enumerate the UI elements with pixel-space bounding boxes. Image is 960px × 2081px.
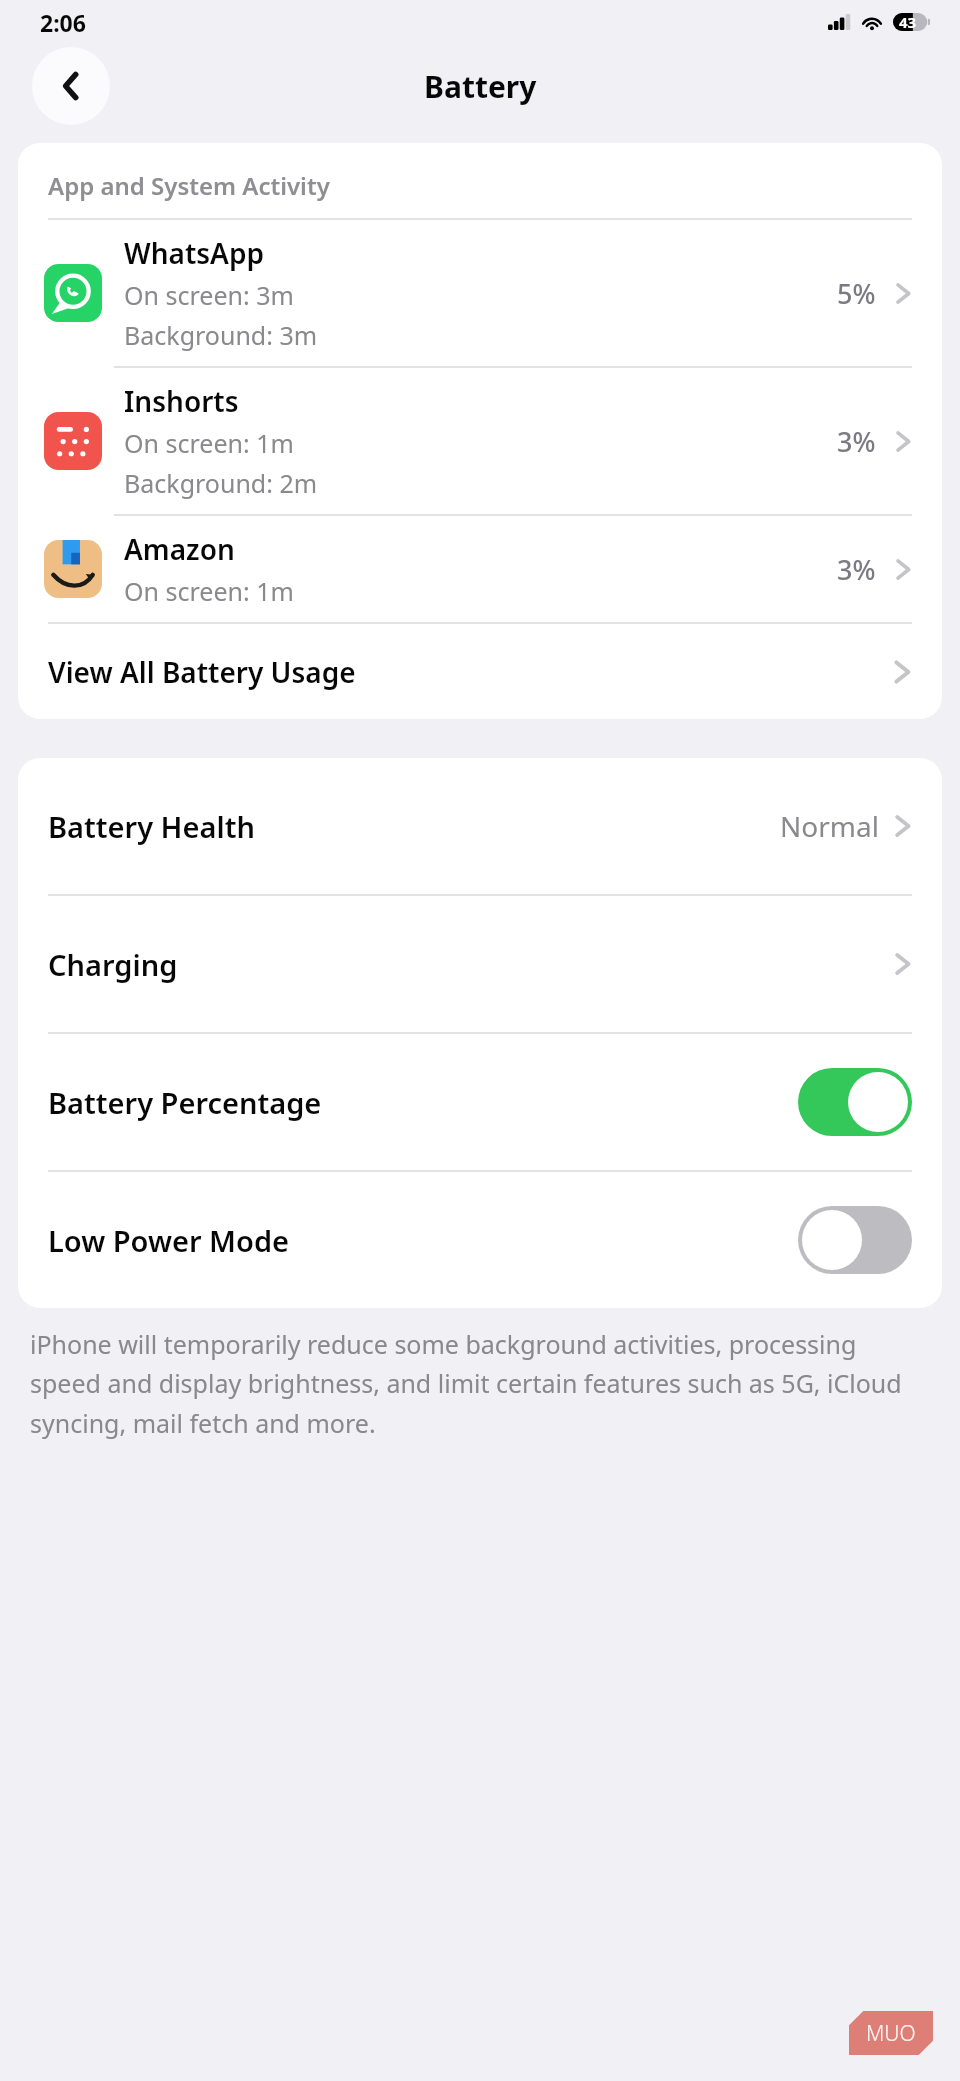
- button[interactable]: Inshorts: [18, 368, 942, 514]
- button[interactable]: [798, 1206, 912, 1274]
- staticText: Battery: [424, 66, 537, 107]
- other: More: [894, 278, 912, 309]
- other: More: [892, 655, 912, 689]
- staticText: On screen: 1m: [124, 574, 294, 608]
- staticText: 43: [899, 12, 917, 32]
- button[interactable]: Battery Percentage: [18, 1034, 942, 1170]
- other: More: [893, 810, 912, 842]
- staticText: Amazon: [124, 530, 235, 568]
- staticText: MUO: [866, 2019, 916, 2048]
- button[interactable]: Low Power Mode: [18, 1172, 942, 1308]
- staticText: Background: 2m: [124, 466, 318, 500]
- staticText: 2:06: [40, 7, 86, 38]
- staticText: 3%: [837, 551, 876, 588]
- staticText: View All Battery Usage: [48, 653, 892, 691]
- other: More: [894, 426, 912, 457]
- staticText: Inshorts: [124, 382, 239, 420]
- staticText: 5%: [837, 275, 876, 312]
- staticText: Background: 3m: [124, 318, 318, 352]
- button[interactable]: [798, 1068, 912, 1136]
- other: More: [894, 554, 912, 585]
- staticText: Charging: [48, 945, 893, 984]
- staticText: WhatsApp: [124, 234, 264, 272]
- staticText: On screen: 3m: [124, 278, 294, 312]
- button[interactable]: Amazon: [18, 516, 942, 622]
- button[interactable]: Charging: [18, 896, 942, 1032]
- staticText: Low Power Mode: [48, 1221, 798, 1260]
- button[interactable]: View All Battery Usage: [18, 624, 942, 719]
- staticText: Battery Percentage: [48, 1083, 798, 1122]
- staticText: 3%: [837, 423, 876, 460]
- button[interactable]: Battery Health: [18, 758, 942, 894]
- staticText: On screen: 1m: [124, 426, 294, 460]
- other: More: [893, 948, 912, 980]
- staticText: App and System Activity: [48, 169, 330, 202]
- staticText: Normal: [780, 807, 879, 845]
- button[interactable]: Back: [32, 47, 110, 125]
- staticText: iPhone will temporarily reduce some back…: [30, 1327, 930, 1441]
- staticText: Battery Health: [48, 807, 780, 846]
- button[interactable]: WhatsApp: [18, 220, 942, 366]
